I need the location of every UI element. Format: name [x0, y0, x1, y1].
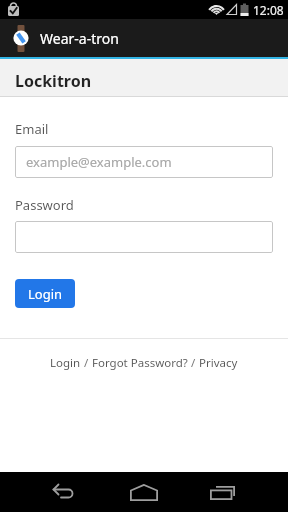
button[interactable] [15, 221, 273, 253]
button[interactable] [51, 483, 77, 501]
button[interactable]: Forgot Password? [92, 355, 188, 371]
button[interactable]: example@example.com [15, 146, 273, 178]
staticText: Wear-a-tron [40, 29, 119, 48]
staticText: Password [15, 196, 74, 214]
button[interactable] [210, 484, 235, 500]
staticText: Lockitron [15, 70, 92, 92]
staticText: example@example.com [26, 153, 172, 171]
staticText: 12:08 [253, 2, 284, 18]
staticText: / [81, 355, 92, 371]
button[interactable] [130, 484, 158, 501]
button[interactable]: Privacy [199, 355, 238, 371]
staticText: Login [28, 285, 63, 303]
staticText: Email [15, 120, 49, 138]
staticText: / [188, 355, 199, 371]
button[interactable]: Login [15, 279, 75, 308]
button[interactable]: Login [50, 355, 81, 371]
